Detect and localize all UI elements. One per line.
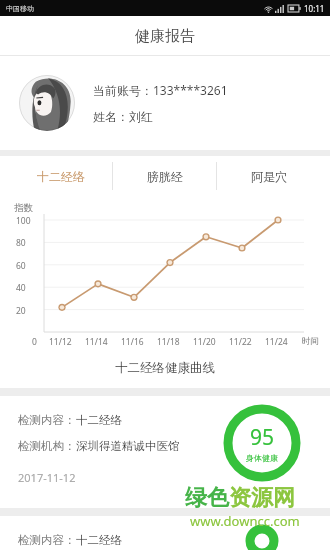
staticText: 80: [16, 237, 26, 249]
staticText: 11/16: [121, 336, 144, 348]
staticText: 健康报告: [135, 27, 195, 46]
staticText: 网: [273, 484, 295, 512]
staticText: 11/24: [265, 336, 288, 348]
staticText: 检测内容：: [18, 533, 76, 547]
button[interactable]: 健康评分 95 身体健康: [223, 404, 301, 482]
staticText: 100: [16, 215, 31, 227]
staticText: 时间: [302, 336, 319, 347]
staticText: 深圳得道精诚中医馆: [76, 439, 180, 453]
staticText: 中国移动: [6, 4, 34, 13]
button[interactable]: 膀胱经: [113, 162, 216, 190]
staticText: 11/14: [85, 336, 108, 348]
staticText: 2017-11-12: [18, 470, 76, 485]
staticText: 指数: [14, 202, 33, 214]
staticText: 资: [229, 484, 251, 512]
staticText: 色: [207, 484, 229, 512]
staticText: 绿: [185, 484, 207, 512]
staticText: 11/20: [193, 336, 216, 348]
staticText: 40: [16, 282, 26, 294]
staticText: 检测机构：: [18, 439, 76, 453]
staticText: 60: [16, 260, 26, 272]
staticText: 源: [251, 484, 273, 512]
button[interactable]: 当前账号：133****3261: [0, 56, 330, 150]
staticText: 十二经络: [76, 533, 122, 547]
staticText: 阿是穴: [251, 169, 287, 184]
button[interactable]: 十二经络: [10, 162, 112, 190]
staticText: 95: [250, 423, 275, 452]
staticText: 十二经络: [76, 413, 122, 427]
staticText: 11/12: [49, 336, 72, 348]
staticText: 十二经络健康曲线: [115, 360, 215, 376]
staticText: 11/22: [229, 336, 252, 348]
button[interactable]: 检测内容：: [0, 516, 330, 550]
staticText: 10:11: [304, 3, 325, 14]
staticText: 20: [16, 305, 26, 317]
button[interactable]: 检测内容：: [0, 396, 330, 508]
button[interactable]: 阿是穴: [217, 162, 320, 190]
staticText: 十二经络: [37, 169, 85, 184]
staticText: www.downcc.com: [190, 512, 300, 530]
staticText: 姓名：刘红: [93, 109, 153, 124]
staticText: 0: [32, 336, 37, 348]
staticText: 身体健康: [246, 453, 278, 463]
staticText: 膀胱经: [147, 169, 183, 184]
staticText: 当前账号：133****3261: [93, 82, 228, 98]
staticText: 检测内容：: [18, 413, 76, 427]
staticText: 11/18: [157, 336, 180, 348]
